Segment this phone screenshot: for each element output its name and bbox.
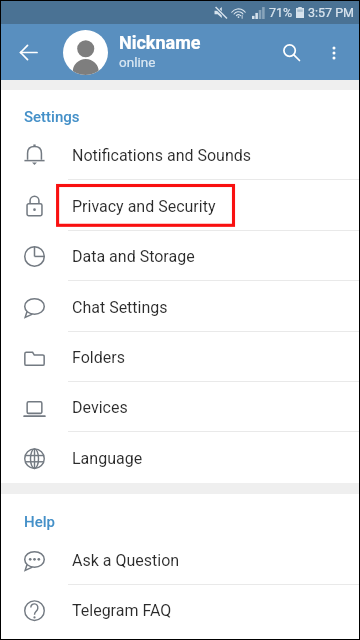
staticText: 71% xyxy=(269,5,293,20)
staticText: online xyxy=(119,54,156,70)
button[interactable]: Notifications and Sounds xyxy=(1,130,359,180)
button[interactable]: Chat Settings xyxy=(1,282,359,332)
button[interactable]: Search xyxy=(269,30,313,74)
button[interactable]: Privacy and Security xyxy=(1,181,359,231)
button[interactable]: Telegram FAQ xyxy=(1,585,359,635)
staticText: Ask a Question xyxy=(72,551,180,570)
button[interactable]: Data and Storage xyxy=(1,231,359,281)
staticText: Devices xyxy=(72,398,128,417)
staticText: Privacy and Security xyxy=(72,197,216,216)
button[interactable]: More options xyxy=(312,30,356,74)
staticText: Settings xyxy=(24,108,80,126)
staticText: Folders xyxy=(72,348,125,367)
staticText: Help xyxy=(24,513,55,531)
button[interactable]: Folders xyxy=(1,332,359,382)
button[interactable]: Profile photo xyxy=(63,30,108,75)
button[interactable]: Back xyxy=(6,30,50,74)
staticText: Notifications and Sounds xyxy=(72,146,252,165)
staticText: Nickname xyxy=(119,32,201,53)
staticText: Chat Settings xyxy=(72,298,168,317)
button[interactable]: Devices xyxy=(1,382,359,432)
button[interactable]: Language xyxy=(1,433,359,483)
staticText: Data and Storage xyxy=(72,247,195,266)
staticText: Language xyxy=(72,449,143,468)
staticText: Telegram FAQ xyxy=(72,601,172,620)
button[interactable]: Ask a Question xyxy=(1,535,359,585)
staticText: 3:57 PM xyxy=(308,5,355,20)
